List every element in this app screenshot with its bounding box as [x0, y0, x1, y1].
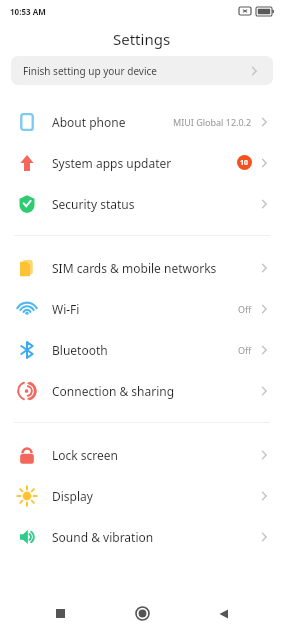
- button[interactable]: System apps updater: [0, 142, 284, 183]
- staticText: Security status: [52, 196, 258, 212]
- button[interactable]: Wi-Fi: [0, 288, 284, 329]
- staticText: Finish setting up your device: [23, 64, 157, 78]
- staticText: 10: [240, 158, 249, 168]
- staticText: Wi-Fi: [52, 301, 238, 317]
- button[interactable]: About phone: [0, 101, 284, 142]
- button[interactable]: Display: [0, 475, 284, 516]
- button[interactable]: Connection & sharing: [0, 370, 284, 411]
- button[interactable]: Finish setting up your device: [11, 56, 273, 85]
- staticText: Lock screen: [52, 447, 258, 463]
- staticText: Settings: [113, 29, 171, 49]
- button[interactable]: Back: [202, 597, 246, 630]
- button[interactable]: SIM cards & mobile networks: [0, 247, 284, 288]
- staticText: SIM cards & mobile networks: [52, 260, 258, 276]
- button[interactable]: Bluetooth: [0, 329, 284, 370]
- staticText: Bluetooth: [52, 342, 238, 358]
- staticText: Connection & sharing: [52, 383, 258, 399]
- staticText: About phone: [52, 114, 173, 130]
- button[interactable]: Lock screen: [0, 434, 284, 475]
- staticText: Off: [238, 303, 252, 315]
- button[interactable]: Home: [120, 597, 164, 630]
- button[interactable]: Recent apps: [38, 597, 82, 630]
- button[interactable]: Security status: [0, 183, 284, 224]
- staticText: System apps updater: [52, 155, 237, 171]
- staticText: Off: [238, 344, 252, 356]
- staticText: Sound & vibration: [52, 529, 258, 545]
- staticText: Display: [52, 488, 258, 504]
- staticText: MIUI Global 12.0.2: [173, 116, 252, 128]
- button[interactable]: Sound & vibration: [0, 516, 284, 557]
- staticText: 10:53 AM: [10, 6, 46, 17]
